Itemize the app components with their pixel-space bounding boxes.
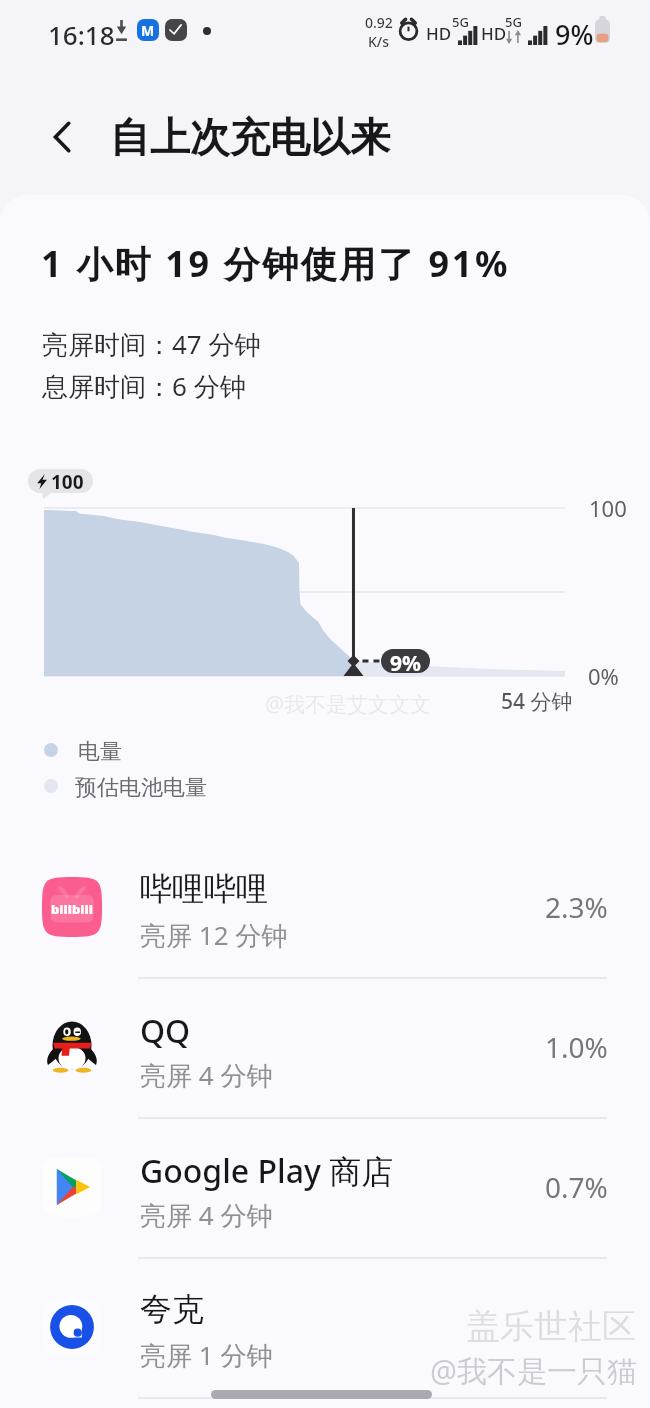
staticText: 5G [452,13,469,31]
staticText: 9% [390,649,421,673]
staticText: 0% [588,661,619,691]
staticText: K/s [368,32,390,51]
staticText: 54 分钟 [501,687,573,716]
staticText: 哔哩哔哩 [140,869,268,909]
staticText: bilibili [51,900,94,918]
staticText: 亮屏 4 分钟 [140,1197,273,1233]
staticText: Google Play 商店 [140,1149,394,1193]
staticText: M [141,21,155,40]
staticText: HD [426,22,452,45]
staticText: 电量 [78,738,122,766]
staticText: 亮屏 1 分钟 [140,1337,273,1373]
button[interactable]: QQ [0,976,650,1116]
staticText: @我不是一只猫 [430,1350,637,1391]
staticText: HD [481,22,507,45]
staticText: 亮屏时间：47 分钟 [42,326,261,362]
staticText: 0.92 [365,13,393,32]
staticText: 亮屏 4 分钟 [140,1057,273,1093]
staticText: 100 [589,493,627,523]
staticText: 1 小时 19 分钟使用了 91% [41,239,511,288]
button[interactable]: bilibili [0,836,650,976]
staticText: 盖乐世社区 [466,1305,636,1348]
staticText: 亮屏 12 分钟 [140,917,288,953]
staticText: 1.0% [545,1028,608,1066]
button[interactable]: Google Play 商店 [0,1116,650,1256]
staticText: 2.3% [545,888,608,926]
staticText: 9% [555,16,594,53]
staticText: 5G [505,13,522,31]
staticText: 夸克 [140,1289,204,1329]
button[interactable]: Back [36,110,90,164]
staticText: 预估电池电量 [75,774,207,802]
staticText: QQ [140,1009,191,1053]
staticText: 16:18 [48,17,115,52]
staticText: 0.7% [545,1168,608,1206]
staticText: 100 [51,469,84,493]
staticText: 息屏时间：6 分钟 [42,368,246,404]
staticText: 自上次充电以来 [110,112,390,162]
button[interactable]: 夸克 [0,1256,650,1396]
staticText: @我不是艾文文文 [265,690,431,719]
